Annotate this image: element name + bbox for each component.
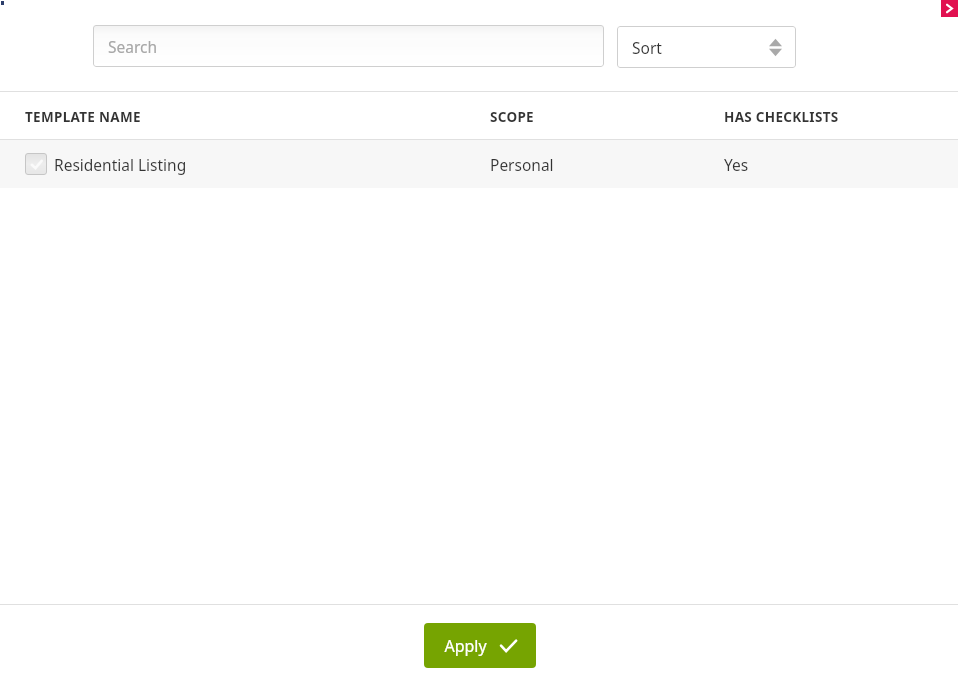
staticText: Personal: [490, 154, 554, 175]
button[interactable]: Select Residential Listing: [0, 140, 958, 188]
button[interactable]: Select Residential Listing: [25, 153, 47, 175]
staticText: SCOPE: [490, 108, 534, 126]
staticText: Sort: [632, 37, 662, 58]
staticText: Residential Listing: [54, 154, 187, 175]
button[interactable]: Sort: [617, 26, 796, 68]
button[interactable]: Search: [93, 25, 604, 67]
staticText: HAS CHECKLISTS: [724, 108, 839, 126]
button[interactable]: Apply: [424, 623, 536, 668]
button[interactable]: Expand panel: [941, 0, 958, 17]
staticText: TEMPLATE NAME: [25, 108, 141, 126]
staticText: Apply: [444, 635, 487, 657]
staticText: Search: [108, 36, 158, 57]
staticText: Yes: [724, 154, 749, 175]
